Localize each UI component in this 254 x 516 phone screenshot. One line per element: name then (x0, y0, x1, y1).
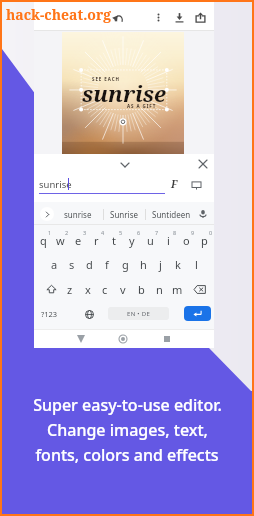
button[interactable]: Recents (159, 331, 175, 347)
staticText: x (85, 282, 91, 297)
staticText: z (67, 282, 73, 297)
staticText: sunrise (82, 78, 166, 108)
button[interactable]: m (168, 277, 186, 301)
button[interactable]: Keyboard (188, 177, 204, 193)
staticText: j (159, 257, 162, 272)
staticText: Suntideen (152, 209, 191, 220)
button[interactable]: Suntideen (146, 206, 197, 223)
button[interactable]: More options (148, 7, 168, 27)
staticText: n (156, 282, 163, 297)
button[interactable]: i (159, 228, 177, 252)
staticText: 6 (137, 229, 141, 236)
staticText: w (56, 233, 65, 248)
staticText: q (40, 233, 47, 248)
staticText: h (140, 257, 147, 272)
button[interactable]: n (150, 277, 168, 301)
button[interactable]: s (63, 252, 81, 276)
button[interactable]: c (96, 277, 114, 301)
staticText: e (75, 233, 82, 248)
button[interactable]: b (132, 277, 150, 301)
button[interactable]: Collapse (117, 157, 133, 173)
staticText: Sunrise (110, 209, 138, 220)
staticText: SEE EACH (92, 76, 120, 82)
staticText: ?123 (41, 309, 58, 319)
staticText: 4 (101, 229, 105, 236)
button[interactable]: w (51, 228, 69, 252)
button[interactable]: Share (190, 7, 210, 27)
button[interactable]: Undo (107, 7, 127, 27)
button[interactable]: ?123 (38, 302, 60, 326)
staticText: 7 (155, 229, 159, 236)
button[interactable]: More suggestions (40, 207, 54, 221)
staticText: s (69, 257, 75, 272)
staticText: 8 (173, 229, 177, 236)
button[interactable]: y (123, 228, 141, 252)
staticText: k (175, 257, 181, 272)
button[interactable]: l (187, 252, 205, 276)
button[interactable]: Download (169, 7, 189, 27)
staticText: y (129, 233, 135, 248)
button[interactable]: q (34, 228, 52, 252)
staticText: p (201, 233, 208, 248)
staticText: u (147, 233, 154, 248)
staticText: r (94, 233, 99, 248)
button[interactable]: Enter (184, 306, 211, 321)
staticText: Change images, text, (47, 419, 208, 441)
button[interactable]: f (98, 252, 116, 276)
button[interactable]: Backspace (189, 277, 209, 301)
button[interactable]: r (87, 228, 105, 252)
button[interactable]: Font (166, 176, 182, 192)
button[interactable]: u (141, 228, 159, 252)
staticText: F (171, 177, 178, 191)
staticText: 0 (209, 229, 213, 236)
staticText: v (120, 282, 126, 297)
staticText: Super easy-to-use editor. (33, 394, 222, 416)
button[interactable]: e (69, 228, 87, 252)
button[interactable]: x (79, 277, 97, 301)
button[interactable]: d (80, 252, 98, 276)
button[interactable]: Sunrise (102, 206, 146, 223)
staticText: sunrise (39, 178, 72, 191)
button[interactable]: Voice input (196, 207, 210, 221)
staticText: i (167, 233, 170, 248)
button[interactable]: k (169, 252, 187, 276)
button[interactable]: j (151, 252, 169, 276)
staticText: AS A GIFT (127, 103, 157, 109)
staticText: l (195, 257, 198, 272)
staticText: c (102, 282, 108, 297)
staticText: d (86, 257, 93, 272)
button[interactable]: p (195, 228, 213, 252)
button[interactable]: v (114, 277, 132, 301)
staticText: f (105, 257, 109, 272)
staticText: 9 (191, 229, 195, 236)
button[interactable]: Home (115, 331, 131, 347)
staticText: 3 (83, 229, 87, 236)
staticText: o (183, 233, 190, 248)
button[interactable]: Shift (41, 277, 61, 301)
button[interactable]: z (61, 277, 79, 301)
staticText: hack-cheat.org (6, 5, 112, 24)
staticText: t (112, 233, 116, 248)
staticText: 2 (65, 229, 69, 236)
button[interactable]: Space (108, 307, 169, 320)
button[interactable]: o (177, 228, 195, 252)
button[interactable]: a (45, 252, 63, 276)
button[interactable]: t (105, 228, 123, 252)
staticText: EN • DE (127, 310, 151, 318)
staticText: a (51, 257, 58, 272)
staticText: 1 (48, 229, 52, 236)
staticText: m (172, 282, 183, 297)
button[interactable]: h (134, 252, 152, 276)
staticText: b (138, 282, 145, 297)
staticText: g (122, 257, 129, 272)
button[interactable]: sunrise (56, 206, 100, 223)
staticText: sunrise (64, 209, 92, 220)
button[interactable]: g (116, 252, 134, 276)
staticText: 5 (119, 229, 123, 236)
button[interactable]: Back (73, 331, 89, 347)
button[interactable]: Change language (81, 302, 97, 326)
button[interactable]: Close (195, 156, 211, 172)
staticText: fonts, colors and effects (35, 444, 219, 466)
